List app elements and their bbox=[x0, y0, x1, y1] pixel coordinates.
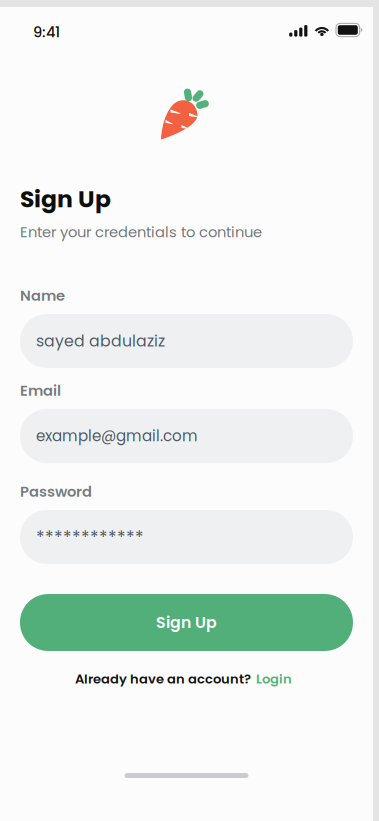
staticText: Name bbox=[20, 285, 65, 306]
staticText: sayed abdulaziz bbox=[36, 330, 165, 352]
button[interactable]: Sign Up bbox=[20, 594, 353, 651]
button[interactable]: Already have an account? bbox=[20, 667, 353, 691]
button[interactable]: example@gmail.com bbox=[20, 409, 353, 463]
staticText: Enter your credentials to continue bbox=[20, 222, 262, 242]
button[interactable]: ************ bbox=[20, 510, 353, 564]
button[interactable]: sayed abdulaziz bbox=[20, 314, 353, 368]
staticText: example@gmail.com bbox=[36, 425, 198, 447]
staticText: Password bbox=[20, 481, 92, 502]
staticText: Sign Up bbox=[20, 183, 111, 215]
staticText: Login bbox=[256, 670, 292, 688]
staticText: ************ bbox=[36, 525, 144, 549]
staticText: 9:41 bbox=[33, 22, 60, 42]
staticText: Email bbox=[20, 380, 61, 401]
staticText: Already have an account? bbox=[75, 670, 251, 688]
staticText: Sign Up bbox=[156, 611, 217, 633]
